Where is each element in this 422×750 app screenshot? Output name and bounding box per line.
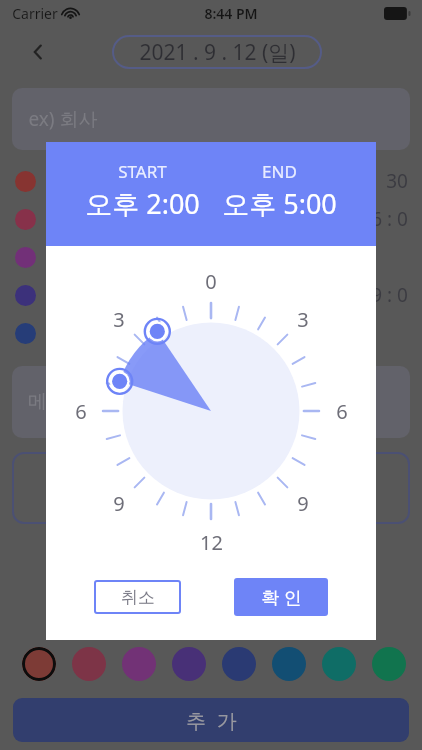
button[interactable]: ex) 회사 [12, 88, 410, 150]
button[interactable]: 일정 [0, 238, 422, 276]
staticText: ex) 회사 [28, 106, 98, 132]
staticText: 9 [297, 490, 309, 517]
button[interactable] [12, 452, 410, 524]
button[interactable]: 일정 [0, 162, 422, 200]
button[interactable]: 일정 [0, 276, 422, 314]
staticText: 오후 5:00 [222, 185, 337, 222]
staticText: Carrier [12, 4, 58, 23]
button[interactable]: Color 2 [122, 647, 156, 681]
button[interactable]: Back [20, 34, 56, 70]
staticText: 6 [75, 398, 87, 425]
staticText: 취소 [121, 587, 155, 608]
staticText: END [262, 160, 297, 183]
button[interactable]: Color 6 [322, 647, 356, 681]
button[interactable]: 메모 [12, 366, 410, 438]
staticText: 추 가 [186, 707, 237, 734]
staticText: 9 : 0 [371, 282, 408, 308]
button[interactable]: 취소 [94, 580, 181, 614]
button[interactable]: Color 4 [222, 647, 256, 681]
staticText: 메모 [28, 390, 66, 414]
button[interactable]: END [222, 160, 337, 222]
button[interactable]: 일정 [0, 200, 422, 238]
staticText: 3 [297, 306, 309, 333]
button[interactable]: 추 가 [13, 698, 409, 742]
staticText: 8:44 PM [204, 4, 258, 23]
button[interactable]: Color 3 [172, 647, 206, 681]
staticText: 6 [336, 398, 348, 425]
staticText: START [118, 160, 167, 183]
button[interactable]: Color 7 [372, 647, 406, 681]
button[interactable]: 2021 . 9 . 12 (일) [112, 35, 322, 69]
button[interactable]: 일정 [0, 314, 422, 352]
staticText: 오후 2:00 [85, 185, 200, 222]
staticText: 12 [200, 529, 223, 556]
staticText: 30 [386, 168, 408, 194]
staticText: 6 : 0 [371, 206, 408, 232]
button[interactable]: Color 5 [272, 647, 306, 681]
staticText: 0 [205, 268, 217, 295]
staticText: 확 인 [261, 585, 302, 610]
staticText: 9 [113, 490, 125, 517]
staticText: 3 [113, 306, 125, 333]
staticText: 2021 . 9 . 12 (일) [139, 38, 296, 67]
button[interactable]: Color 1 [72, 647, 106, 681]
button[interactable]: Color 0 [22, 647, 56, 681]
button[interactable]: 확 인 [234, 578, 328, 616]
button[interactable]: START [85, 160, 200, 222]
